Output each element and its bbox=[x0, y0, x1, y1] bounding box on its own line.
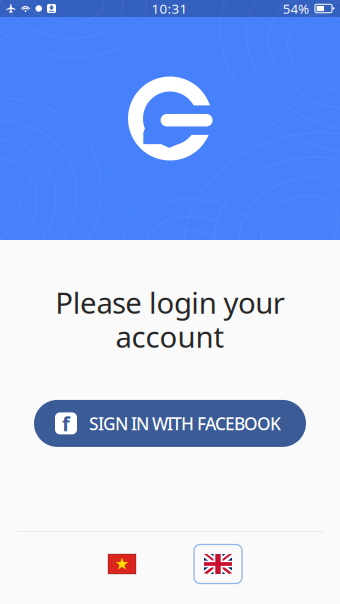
staticText: Please login your bbox=[55, 283, 285, 322]
button[interactable]: Tiếng Việt bbox=[98, 544, 146, 584]
staticText: 54% bbox=[283, 0, 309, 17]
staticText: SIGN IN WITH FACEBOOK bbox=[89, 412, 281, 435]
button[interactable]: English bbox=[194, 544, 242, 583]
button[interactable]: f bbox=[34, 400, 306, 447]
staticText: f bbox=[62, 410, 70, 437]
staticText: 10:31 bbox=[151, 0, 187, 17]
staticText: account bbox=[115, 317, 224, 356]
